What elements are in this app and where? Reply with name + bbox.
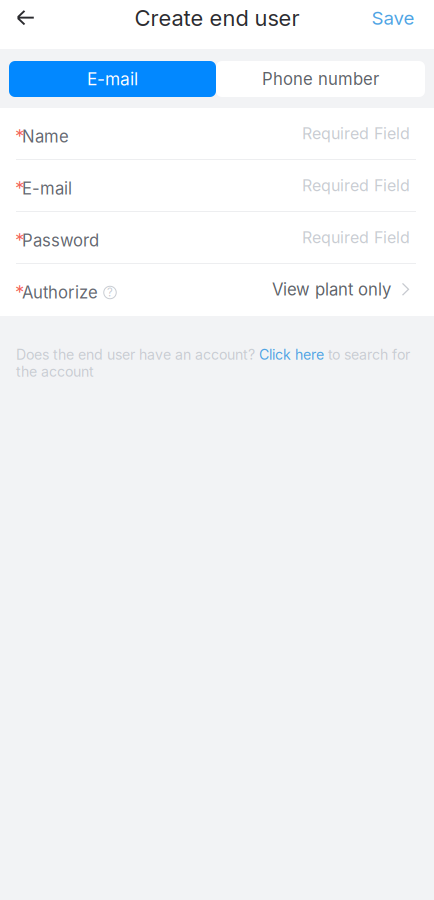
staticText: *: [15, 228, 24, 251]
button[interactable]: *: [0, 160, 434, 212]
staticText: *: [15, 124, 24, 147]
button[interactable]: E-mail: [9, 61, 216, 97]
staticText: Name: [22, 126, 69, 147]
staticText: Password: [22, 230, 99, 251]
staticText: ?: [107, 286, 113, 299]
staticText: View plant only: [272, 279, 391, 300]
staticText: *: [15, 176, 24, 199]
button[interactable]: *: [0, 108, 434, 160]
staticText: E-mail: [87, 68, 138, 89]
staticText: Create end user: [134, 5, 299, 31]
button[interactable]: *: [0, 212, 434, 264]
staticText: Save: [371, 7, 414, 29]
button[interactable]: Back: [0, 0, 47, 36]
staticText: Required Field: [302, 124, 410, 143]
staticText: Does the end user have an account? Click…: [16, 346, 410, 380]
staticText: E-mail: [22, 178, 72, 199]
button[interactable]: Save: [362, 0, 424, 36]
staticText: *: [15, 280, 24, 303]
button[interactable]: Phone number: [216, 61, 425, 97]
staticText: Required Field: [302, 176, 410, 195]
staticText: Phone number: [262, 69, 379, 89]
staticText: Authorize: [22, 282, 98, 303]
button[interactable]: *: [0, 264, 434, 316]
staticText: Required Field: [302, 228, 410, 247]
